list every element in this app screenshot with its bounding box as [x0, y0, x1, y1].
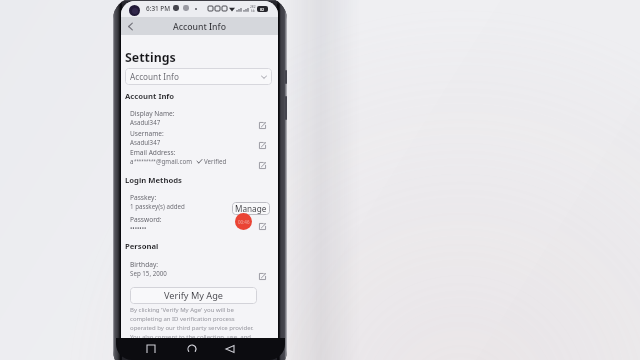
button[interactable]: Password: — [130, 215, 266, 232]
staticText: Asadul347 — [130, 138, 161, 146]
button[interactable]: Manage — [232, 202, 270, 215]
staticText: Settings — [125, 49, 176, 66]
button[interactable]: Edit — [257, 221, 267, 231]
staticText: Birthday: — [130, 260, 159, 269]
staticText: Passkey: — [130, 193, 157, 202]
staticText: Account Info — [173, 21, 226, 33]
button[interactable]: Email Address: — [130, 148, 266, 165]
staticText: Personal — [125, 241, 159, 251]
button[interactable]: Edit — [257, 271, 267, 281]
button[interactable]: Edit — [257, 160, 267, 170]
staticText: Verify My Age — [164, 289, 224, 302]
staticText: Account Info — [125, 91, 175, 101]
staticText: Sep 15, 2000 — [130, 269, 167, 277]
button[interactable]: Display Name: — [130, 109, 266, 126]
staticText: Manage — [235, 203, 267, 214]
staticText: Display Name: — [130, 109, 175, 118]
button[interactable]: Stop screen recording — [235, 213, 252, 230]
button[interactable]: Verify My Age — [130, 287, 257, 304]
staticText: 6:31 PM — [146, 4, 171, 13]
staticText: ••••••• — [130, 224, 147, 232]
staticText: kb — [251, 9, 255, 13]
staticText: 1 passkey(s) added — [130, 202, 185, 210]
staticText: @gmail.com — [156, 157, 192, 165]
button[interactable]: Passkey: — [130, 193, 266, 210]
button[interactable]: Home — [184, 341, 200, 357]
staticText: Account Info — [130, 71, 179, 82]
button[interactable]: Recent apps — [143, 341, 159, 357]
staticText: Verified — [204, 157, 227, 165]
staticText: a — [130, 157, 134, 165]
button[interactable]: Birthday: — [130, 260, 266, 277]
button[interactable]: Back — [222, 341, 238, 357]
button[interactable]: Edit — [257, 120, 267, 130]
staticText: Password: — [130, 215, 162, 224]
staticText: Asadul347 — [130, 118, 161, 126]
button[interactable]: Edit — [257, 140, 267, 150]
button[interactable]: Username: — [130, 129, 266, 146]
staticText: Email Address: — [130, 148, 176, 157]
staticText: By clicking 'Verify My Age' you will be … — [130, 306, 259, 338]
staticText: 82 — [260, 7, 265, 12]
button[interactable]: Account Info — [125, 68, 272, 85]
staticText: ********* — [134, 158, 156, 164]
staticText: Login Methods — [125, 175, 182, 185]
button[interactable]: Back — [123, 19, 138, 34]
staticText: 282 — [250, 5, 256, 9]
staticText: 00:46 — [238, 219, 250, 225]
staticText: Username: — [130, 129, 164, 138]
